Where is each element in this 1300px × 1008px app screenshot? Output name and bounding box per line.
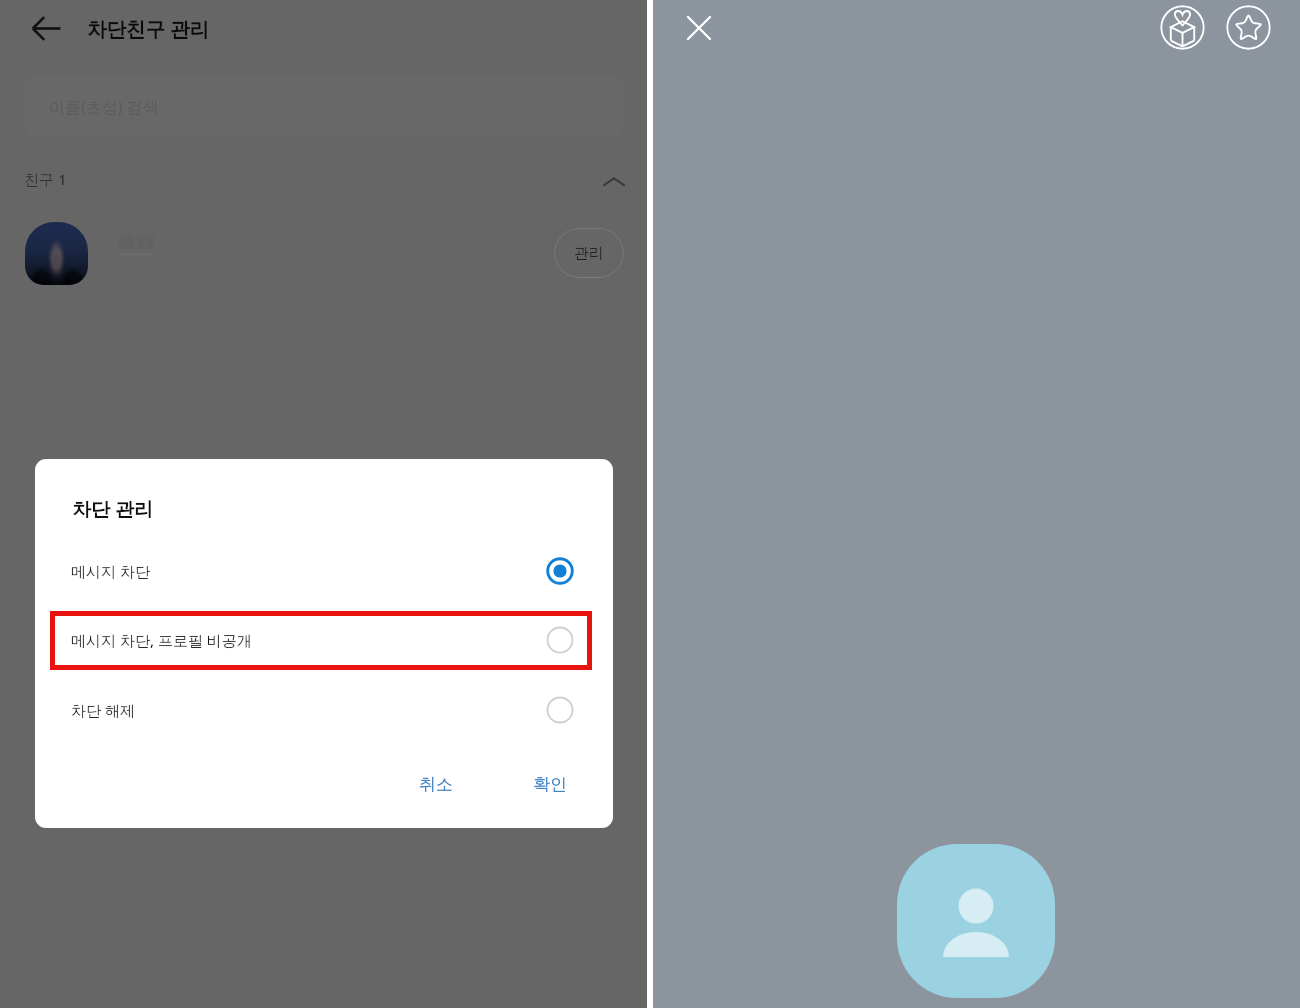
staticText: 취소 (419, 774, 453, 795)
staticText: 관리 (574, 244, 604, 263)
staticText: 메시지 차단 (71, 561, 150, 581)
staticText: 차단 관리 (72, 496, 153, 522)
staticText: 차단친구 관리 (87, 15, 210, 42)
button[interactable]: 메시지 차단 (35, 536, 613, 606)
button[interactable]: Gift (1160, 5, 1205, 50)
staticText: 차단 해제 (71, 700, 135, 720)
staticText: 메시지 차단, 프로필 비공개 (71, 630, 252, 650)
staticText: 친구 1 (24, 169, 67, 189)
button[interactable]: Close (675, 4, 723, 52)
button[interactable]: Back (18, 0, 74, 56)
staticText: 확인 (533, 774, 567, 795)
button[interactable]: 확인 (510, 755, 590, 813)
button[interactable]: Collapse (592, 160, 636, 204)
button[interactable]: 메시지 차단, 프로필 비공개 (35, 605, 613, 675)
staticText: 이름(초성) 검색 (49, 96, 159, 118)
button[interactable]: 관리 (554, 228, 624, 278)
button[interactable]: 관리 (0, 208, 647, 300)
button[interactable]: Favorite (1226, 5, 1271, 50)
button[interactable]: 취소 (396, 755, 476, 813)
button[interactable]: 차단 해제 (35, 675, 613, 745)
